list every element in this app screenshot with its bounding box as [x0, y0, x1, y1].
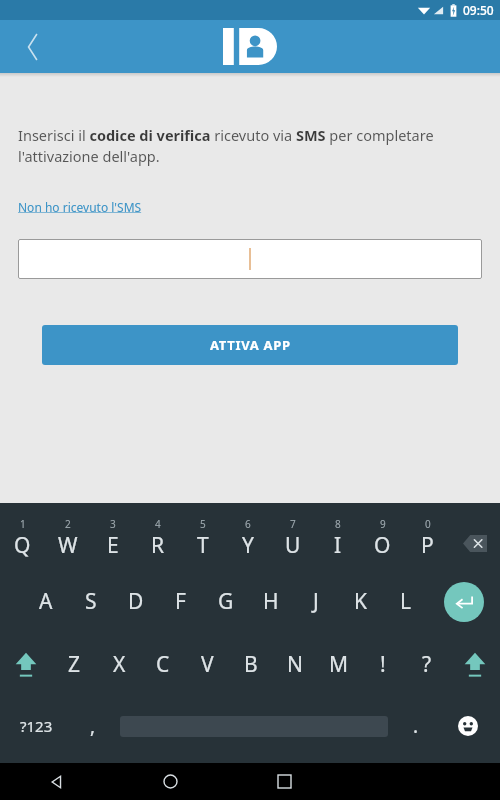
staticText: 5: [200, 517, 206, 531]
staticText: G: [218, 587, 234, 616]
staticText: ATTIVA APP: [210, 336, 291, 354]
button[interactable]: D: [113, 570, 158, 633]
staticText: 0: [425, 517, 431, 531]
button[interactable]: Shift: [0, 633, 52, 696]
staticText: 1: [20, 517, 26, 531]
button[interactable]: 9: [360, 507, 405, 570]
button[interactable]: 6: [225, 507, 270, 570]
button[interactable]: Shift: [449, 633, 500, 696]
button[interactable]: Non ho ricevuto l'SMS: [18, 199, 142, 215]
button[interactable]: Back: [12, 26, 54, 68]
button[interactable]: [18, 239, 482, 279]
staticText: X: [113, 650, 126, 679]
button[interactable]: .: [395, 696, 436, 756]
button[interactable]: 7: [270, 507, 315, 570]
staticText: 2: [65, 517, 71, 531]
button[interactable]: N: [273, 633, 317, 696]
button[interactable]: Enter: [428, 570, 500, 633]
button[interactable]: !: [361, 633, 405, 696]
staticText: C: [156, 650, 170, 679]
button[interactable]: ATTIVA APP: [42, 325, 458, 365]
staticText: 3: [110, 517, 116, 531]
staticText: R: [151, 531, 165, 560]
button[interactable]: Home: [113, 763, 227, 800]
button[interactable]: 2: [45, 507, 90, 570]
button[interactable]: C: [141, 633, 185, 696]
button[interactable]: G: [203, 570, 248, 633]
button[interactable]: 8: [315, 507, 360, 570]
staticText: P: [421, 531, 434, 560]
staticText: Q: [14, 531, 31, 560]
button[interactable]: M: [317, 633, 361, 696]
button[interactable]: 3: [90, 507, 135, 570]
button[interactable]: 4: [135, 507, 180, 570]
staticText: I: [334, 531, 342, 560]
button[interactable]: B: [229, 633, 273, 696]
staticText: Non ho ricevuto l'SMS: [18, 199, 142, 215]
staticText: 4: [155, 517, 161, 531]
staticText: J: [313, 587, 319, 616]
button[interactable]: V: [185, 633, 229, 696]
staticText: .: [413, 713, 419, 739]
staticText: M: [329, 650, 349, 679]
staticText: N: [287, 650, 303, 679]
staticText: E: [107, 531, 119, 560]
staticText: W: [58, 531, 78, 560]
staticText: ,: [90, 713, 96, 739]
button[interactable]: Emoji: [436, 696, 500, 756]
button[interactable]: 1: [0, 507, 45, 570]
staticText: F: [175, 587, 186, 616]
staticText: ?: [422, 650, 432, 679]
staticText: L: [400, 587, 412, 616]
button[interactable]: S: [68, 570, 113, 633]
staticText: 9: [380, 517, 386, 531]
button[interactable]: F: [158, 570, 203, 633]
staticText: K: [354, 587, 367, 616]
button[interactable]: A: [23, 570, 68, 633]
staticText: A: [39, 587, 53, 616]
staticText: ?123: [20, 716, 53, 736]
button[interactable]: Space: [113, 696, 395, 756]
button[interactable]: J: [293, 570, 338, 633]
button[interactable]: Backspace: [450, 507, 500, 570]
staticText: 09:50: [463, 2, 494, 18]
button[interactable]: Recents: [227, 763, 341, 800]
staticText: V: [201, 650, 214, 679]
button[interactable]: Back: [0, 763, 113, 800]
staticText: Y: [242, 531, 254, 560]
staticText: S: [85, 587, 97, 616]
staticText: O: [374, 531, 391, 560]
button[interactable]: 5: [180, 507, 225, 570]
button[interactable]: K: [338, 570, 383, 633]
staticText: 8: [335, 517, 341, 531]
staticText: B: [244, 650, 258, 679]
button[interactable]: H: [248, 570, 293, 633]
staticText: Z: [68, 650, 81, 679]
button[interactable]: ?123: [0, 696, 72, 756]
button[interactable]: L: [383, 570, 428, 633]
button[interactable]: 0: [405, 507, 450, 570]
staticText: !: [380, 650, 386, 679]
button[interactable]: ,: [72, 696, 113, 756]
staticText: 6: [245, 517, 251, 531]
button[interactable]: X: [97, 633, 141, 696]
staticText: 7: [290, 517, 296, 531]
button[interactable]: Z: [52, 633, 97, 696]
staticText: T: [197, 531, 209, 560]
staticText: U: [285, 531, 301, 560]
staticText: H: [263, 587, 279, 616]
staticText: D: [128, 587, 144, 616]
button[interactable]: ?: [405, 633, 449, 696]
staticText: Inserisci il codice di verifica ricevuto…: [18, 125, 482, 167]
